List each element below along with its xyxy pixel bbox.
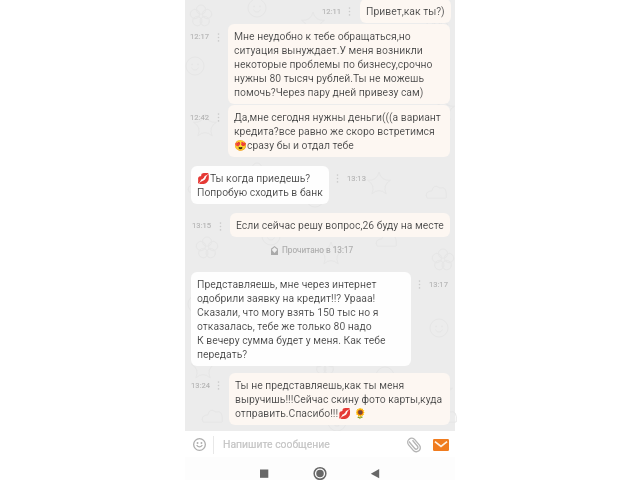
button[interactable]: Если сейчас решу вопрос,26 буду на месте	[230, 213, 450, 237]
staticText: Напишите сообщение	[223, 438, 330, 450]
button[interactable]: Attach file	[401, 431, 427, 458]
staticText: Да,мне сегодня нужны деньги(((а вариант …	[234, 110, 441, 152]
staticText: Ты не представляешь,как ты меня выручишь…	[235, 378, 443, 420]
staticText: 13:13	[347, 174, 366, 183]
button[interactable]: Recent apps	[244, 457, 284, 480]
staticText: 13:24	[170, 381, 210, 390]
button[interactable]: Back	[355, 457, 395, 480]
button[interactable]: Send	[428, 431, 454, 458]
staticText: Представляешь, мне через интернет одобри…	[197, 277, 386, 361]
staticText: Привет,как ты?)	[366, 4, 445, 18]
button[interactable]: 💋Ты когда приедешь? Попробую сходить в б…	[191, 166, 329, 204]
button[interactable]: Мне неудобно к тебе обращаться,но ситуац…	[228, 24, 450, 104]
button[interactable]: Home	[300, 457, 340, 480]
staticText: Прочитано в 13:17	[282, 245, 354, 255]
staticText: 12:17	[169, 32, 209, 41]
staticText: 12:42	[169, 113, 209, 122]
staticText: Мне неудобно к тебе обращаться,но ситуац…	[234, 29, 433, 99]
button[interactable]: Привет,как ты?)	[360, 0, 451, 23]
button[interactable]: Да,мне сегодня нужны деньги(((а вариант …	[228, 105, 450, 157]
button[interactable]: Представляешь, мне через интернет одобри…	[191, 272, 411, 366]
button[interactable]: Emoji	[185, 431, 213, 458]
staticText: Если сейчас решу вопрос,26 буду на месте	[236, 218, 444, 232]
staticText: 13:15	[171, 221, 211, 230]
staticText: 💋Ты когда приедешь? Попробую сходить в б…	[197, 171, 323, 199]
staticText: 13:17	[429, 280, 448, 289]
staticText: 12:11	[301, 7, 341, 16]
button[interactable]: Ты не представляешь,как ты меня выручишь…	[229, 373, 450, 425]
